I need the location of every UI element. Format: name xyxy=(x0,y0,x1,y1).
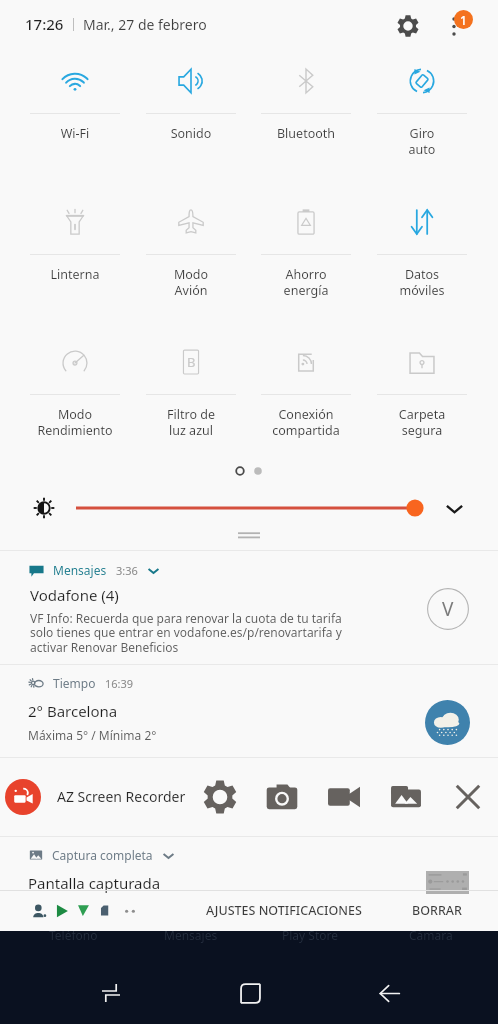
staticText: Linterna xyxy=(17,266,133,283)
button[interactable]: Bluetooth xyxy=(248,50,364,191)
staticText: Carpeta segura xyxy=(364,406,480,439)
staticText: VF Info: Recuerda que para renovar la cu… xyxy=(30,610,348,656)
staticText: AZ Screen Recorder xyxy=(57,787,186,806)
staticText: B xyxy=(187,353,196,371)
button[interactable]: Screenshot xyxy=(259,774,305,820)
staticText: Giro auto xyxy=(364,125,480,158)
button[interactable]: More options xyxy=(432,4,476,48)
staticText: Vodafone (4) xyxy=(30,585,119,605)
staticText: Conexión compartida xyxy=(248,406,364,439)
button[interactable]: Conexión compartida xyxy=(248,331,364,472)
button[interactable]: Sonido xyxy=(133,50,249,191)
button[interactable]: Brightness xyxy=(76,495,423,521)
button[interactable]: Ahorro energía xyxy=(248,191,364,332)
staticText: Wi-Fi xyxy=(17,125,133,142)
staticText: Máxima 5° / Mínima 2° xyxy=(28,727,157,743)
button[interactable]: Modo Rendimiento xyxy=(17,331,133,472)
staticText: 1 xyxy=(460,12,467,28)
staticText: Ahorro energía xyxy=(248,266,364,299)
staticText: Datos móviles xyxy=(364,266,480,299)
button[interactable]: Linterna xyxy=(17,191,133,332)
button[interactable]: Back xyxy=(366,970,412,1016)
button[interactable]: AJUSTES NOTIFICACIONES xyxy=(198,891,370,930)
button[interactable]: Expand xyxy=(435,493,473,523)
button[interactable]: Gallery xyxy=(383,774,429,820)
staticText: BORRAR xyxy=(412,902,462,919)
button[interactable]: Record video xyxy=(321,774,367,820)
staticText: 16:39 xyxy=(105,676,134,691)
staticText: Mensajes xyxy=(53,562,107,578)
button[interactable]: Carpeta segura xyxy=(364,331,480,472)
staticText: Sonido xyxy=(133,125,249,142)
button[interactable]: Modo Avión xyxy=(133,191,249,332)
staticText: Mensajes xyxy=(164,927,218,943)
button[interactable]: Settings xyxy=(197,774,243,820)
staticText: Play Store xyxy=(282,927,338,943)
button[interactable]: BORRAR xyxy=(404,891,470,930)
staticText: Teléfono xyxy=(49,927,98,943)
staticText: AJUSTES NOTIFICACIONES xyxy=(206,902,362,919)
button[interactable]: Giro auto xyxy=(364,50,480,191)
button[interactable]: Wi-Fi xyxy=(17,50,133,191)
button[interactable]: Close xyxy=(445,774,491,820)
staticText: Tiempo xyxy=(53,675,96,691)
staticText: 3:36 xyxy=(116,563,138,578)
staticText: Pantalla capturada xyxy=(28,873,161,893)
staticText: Cámara xyxy=(409,927,453,943)
staticText: Filtro de luz azul xyxy=(133,406,249,439)
staticText: Mar., 27 de febrero xyxy=(83,15,207,34)
button[interactable]: Settings xyxy=(386,4,430,48)
button[interactable]: Datos móviles xyxy=(364,191,480,332)
staticText: Bluetooth xyxy=(248,125,364,142)
staticText: Modo Rendimiento xyxy=(17,406,133,439)
staticText: 2° Barcelona xyxy=(28,701,118,721)
staticText: 17:26 xyxy=(25,14,64,34)
button[interactable]: B xyxy=(133,331,249,472)
staticText: Captura completa xyxy=(52,847,153,863)
button[interactable]: Recents xyxy=(88,970,134,1016)
button[interactable]: Home xyxy=(227,970,273,1016)
staticText: Modo Avión xyxy=(133,266,249,299)
staticText: V xyxy=(442,596,454,622)
